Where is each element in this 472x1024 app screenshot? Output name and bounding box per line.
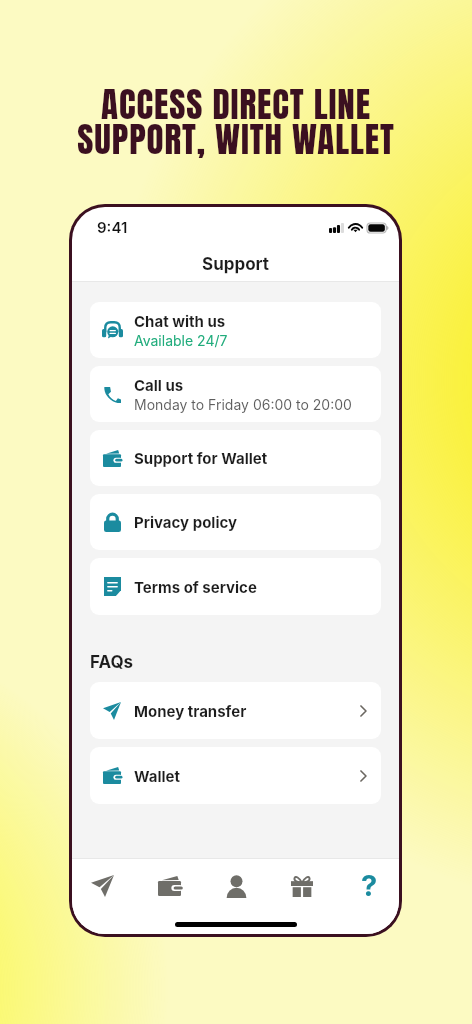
staticText: Privacy policy <box>134 513 238 531</box>
button[interactable]: Send <box>80 864 124 908</box>
staticText: FAQs <box>90 652 134 673</box>
staticText: 9:41 <box>97 218 128 236</box>
button[interactable]: Wallet <box>90 747 381 804</box>
staticText: Available 24/7 <box>134 332 228 349</box>
button[interactable]: Chat with us <box>90 302 381 358</box>
button[interactable]: Money transfer <box>90 682 381 739</box>
button[interactable]: Support for Wallet <box>90 430 381 486</box>
button[interactable]: Profile <box>214 864 258 908</box>
button[interactable]: Wallet <box>147 864 191 908</box>
button[interactable]: Rewards <box>280 864 324 908</box>
staticText: ACCESS DIRECT LINE <box>0 78 472 131</box>
staticText: Terms of service <box>134 578 257 596</box>
staticText: Support <box>202 254 270 275</box>
button[interactable]: Privacy policy <box>90 494 381 550</box>
staticText: Money transfer <box>134 702 247 720</box>
staticText: Support for Wallet <box>134 449 268 467</box>
staticText: ? <box>361 868 378 903</box>
staticText: Call us <box>134 376 184 394</box>
staticText: SUPPORT, WITH WALLET <box>0 113 472 166</box>
button[interactable]: Call us <box>90 366 381 422</box>
staticText: Chat with us <box>134 312 226 330</box>
button[interactable]: Help <box>347 864 391 908</box>
staticText: Wallet <box>134 767 180 785</box>
button[interactable]: Terms of service <box>90 558 381 615</box>
staticText: Monday to Friday 06:00 to 20:00 <box>134 396 352 413</box>
